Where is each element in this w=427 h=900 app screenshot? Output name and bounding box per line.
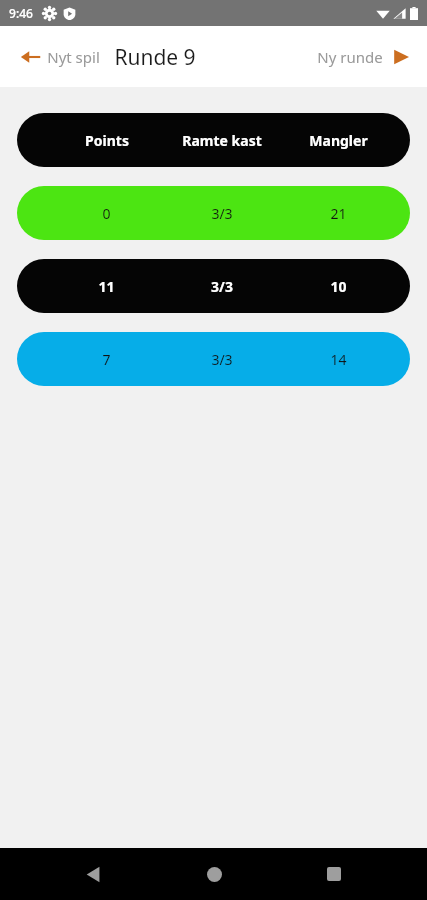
button[interactable]: Points (17, 113, 410, 167)
other: Back (20, 46, 42, 68)
staticText: 0 (102, 204, 111, 223)
button[interactable]: Home (186, 848, 242, 900)
staticText: Runde 9 (114, 43, 196, 72)
staticText: 3/3 (211, 350, 233, 369)
staticText: Ramte kast (182, 131, 262, 150)
button[interactable]: Back (14, 38, 106, 76)
button[interactable]: 7 (17, 332, 410, 386)
other: New round (391, 47, 411, 67)
button[interactable]: Ny runde (311, 39, 417, 75)
staticText: Mangler (309, 131, 368, 150)
button[interactable]: 0 (17, 186, 410, 240)
button[interactable]: 11 (17, 259, 410, 313)
staticText: 10 (330, 277, 347, 296)
staticText: 14 (330, 350, 347, 369)
button[interactable]: Back (65, 848, 121, 900)
staticText: 3/3 (211, 204, 233, 223)
staticText: Nyt spil (47, 47, 100, 67)
button[interactable]: Recents (306, 848, 362, 900)
staticText: Ny runde (317, 47, 383, 67)
staticText: 3/3 (211, 277, 233, 296)
staticText: Points (85, 131, 129, 150)
staticText: 7 (102, 350, 111, 369)
staticText: 9:46 (9, 5, 33, 21)
staticText: 11 (98, 277, 115, 296)
staticText: 21 (330, 204, 347, 223)
